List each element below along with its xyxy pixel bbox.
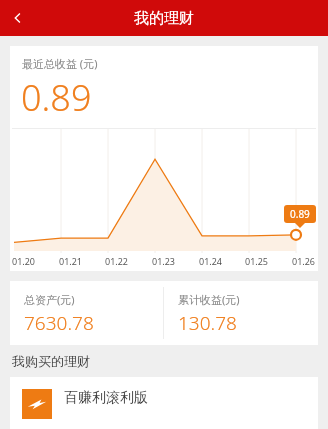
- staticText: 01.22: [105, 255, 129, 267]
- staticText: 百赚利滚利版: [64, 389, 148, 407]
- staticText: 我购买的理财: [12, 353, 90, 369]
- staticText: 01.23: [152, 255, 176, 267]
- staticText: 总资产(元): [24, 292, 75, 307]
- staticText: 我的理财: [134, 9, 194, 28]
- staticText: 累计收益(元): [178, 292, 240, 307]
- button[interactable]: Back: [0, 0, 36, 36]
- staticText: 0.89: [21, 73, 92, 122]
- staticText: 130.78: [178, 310, 237, 336]
- button[interactable]: 累计收益(元): [164, 281, 318, 345]
- button[interactable]: 总资产(元): [10, 281, 163, 345]
- staticText: 0.89: [290, 207, 310, 221]
- staticText: 01.26: [292, 255, 316, 267]
- staticText: 7630.78: [24, 310, 94, 336]
- staticText: 01.24: [199, 255, 223, 267]
- staticText: 01.25: [245, 255, 269, 267]
- staticText: 最近总收益 (元): [22, 56, 98, 71]
- staticText: 01.20: [12, 255, 36, 267]
- button[interactable]: 百赚利滚利版: [10, 377, 318, 429]
- staticText: 01.21: [59, 255, 83, 267]
